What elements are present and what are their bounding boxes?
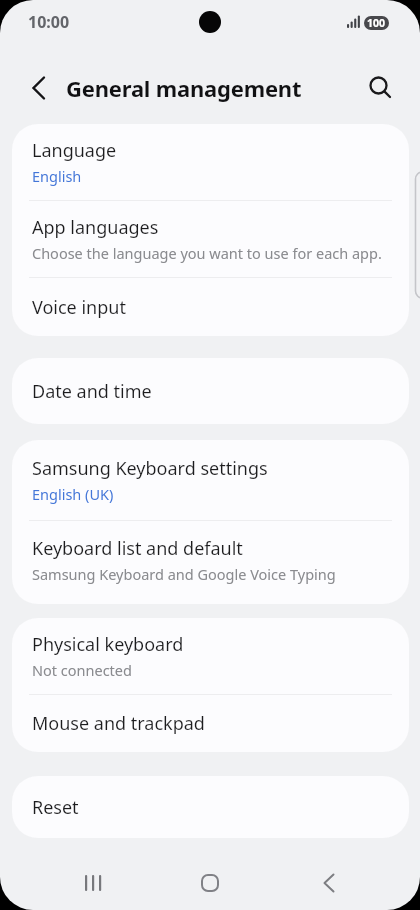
staticText: Choose the language you want to use for … bbox=[32, 243, 382, 263]
staticText: 100 bbox=[367, 16, 386, 30]
staticText: English (UK) bbox=[32, 484, 114, 504]
button[interactable]: Date and time bbox=[12, 358, 409, 424]
button[interactable]: App languages bbox=[12, 201, 409, 277]
button[interactable]: Voice input bbox=[12, 278, 409, 336]
staticText: Physical keyboard bbox=[32, 632, 184, 657]
staticText: Voice input bbox=[32, 295, 126, 320]
button[interactable] bbox=[320, 874, 338, 892]
staticText: Date and time bbox=[32, 379, 152, 404]
button[interactable]: Language bbox=[12, 124, 409, 200]
staticText: Reset bbox=[32, 795, 79, 820]
staticText: 10:00 bbox=[28, 11, 70, 33]
button[interactable]: Mouse and trackpad bbox=[12, 695, 409, 752]
button[interactable]: Reset bbox=[12, 776, 409, 838]
staticText: App languages bbox=[32, 215, 159, 240]
staticText: Samsung Keyboard and Google Voice Typing bbox=[32, 564, 336, 584]
staticText: Keyboard list and default bbox=[32, 536, 243, 561]
staticText: Samsung Keyboard settings bbox=[32, 456, 268, 481]
button[interactable] bbox=[201, 874, 219, 892]
staticText: Not connected bbox=[32, 660, 132, 680]
staticText: Language bbox=[32, 138, 117, 163]
staticText: General management bbox=[66, 73, 302, 103]
button[interactable] bbox=[369, 76, 393, 100]
button[interactable] bbox=[30, 76, 48, 100]
button[interactable] bbox=[84, 874, 102, 892]
button[interactable]: Physical keyboard bbox=[12, 618, 409, 694]
button[interactable]: Samsung Keyboard settings bbox=[12, 440, 409, 520]
staticText: Mouse and trackpad bbox=[32, 711, 205, 736]
button[interactable]: Keyboard list and default bbox=[12, 521, 409, 604]
staticText: English bbox=[32, 166, 82, 186]
